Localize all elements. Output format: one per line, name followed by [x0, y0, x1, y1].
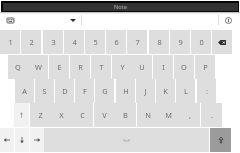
staticText: F	[83, 86, 87, 96]
button[interactable]: Shift	[14, 103, 29, 127]
staticText: G	[102, 86, 108, 96]
button[interactable]: :	[197, 79, 216, 103]
button[interactable]: T	[91, 55, 111, 79]
button[interactable]: 3	[43, 30, 63, 54]
staticText: Q	[15, 62, 21, 72]
button[interactable]: M	[158, 103, 179, 127]
button[interactable]: G	[95, 79, 114, 103]
button[interactable]: O	[174, 55, 194, 79]
staticText: H	[123, 86, 129, 96]
button[interactable]: Enter	[210, 128, 231, 152]
button[interactable]: 7	[127, 30, 147, 54]
button[interactable]: N	[137, 103, 158, 127]
button[interactable]: L	[176, 79, 195, 103]
button[interactable]: D	[55, 79, 74, 103]
button[interactable]: Y	[112, 55, 132, 79]
button[interactable]: E	[49, 55, 69, 79]
staticText: O	[181, 62, 187, 72]
button[interactable]: J	[136, 79, 155, 103]
staticText: 5	[93, 37, 98, 47]
staticText: J	[144, 86, 147, 96]
staticText: ,	[189, 110, 191, 120]
button[interactable]: R	[70, 55, 90, 79]
staticText: 3	[51, 37, 56, 47]
staticText: D	[62, 86, 68, 96]
staticText: 2	[29, 37, 34, 47]
staticText: Note	[114, 3, 127, 11]
staticText: 0	[199, 37, 204, 47]
staticText: U	[139, 62, 145, 72]
button[interactable]: Choose keyboard layout	[67, 15, 78, 26]
button[interactable]: 2	[21, 30, 41, 54]
button[interactable]: Q	[8, 55, 28, 79]
staticText: 9	[178, 37, 183, 47]
button[interactable]: W	[28, 55, 48, 79]
button[interactable]: I	[153, 55, 173, 79]
staticText: .	[211, 110, 213, 120]
button[interactable]: Move cursor right	[30, 128, 44, 152]
staticText: 1	[8, 37, 13, 47]
staticText: I	[162, 62, 165, 72]
staticText: V	[102, 110, 107, 120]
button[interactable]: Z	[30, 103, 51, 127]
staticText: E	[57, 62, 62, 72]
staticText: C	[80, 110, 85, 120]
button[interactable]: X	[51, 103, 72, 127]
button[interactable]: Change input method	[4, 15, 16, 26]
staticText: R	[78, 62, 83, 72]
button[interactable]: 6	[106, 30, 126, 54]
staticText: 6	[114, 37, 119, 47]
staticText: A	[22, 86, 27, 96]
button[interactable]: 8	[149, 30, 169, 54]
staticText: S	[42, 86, 47, 96]
button[interactable]: F	[75, 79, 94, 103]
button[interactable]: B	[115, 103, 136, 127]
staticText: P	[203, 62, 208, 72]
button[interactable]: Backspace	[212, 30, 232, 54]
button[interactable]: 9	[170, 30, 190, 54]
button[interactable]: V	[94, 103, 115, 127]
staticText: 8	[157, 37, 162, 47]
button[interactable]: U	[132, 55, 152, 79]
staticText: B	[123, 110, 128, 120]
staticText: M	[165, 110, 172, 120]
button[interactable]: P	[195, 55, 215, 79]
button[interactable]: ,	[179, 103, 200, 127]
button[interactable]: 5	[85, 30, 105, 54]
button[interactable]: K	[156, 79, 175, 103]
staticText: 4	[72, 37, 77, 47]
staticText: T	[99, 62, 104, 72]
staticText: Z	[38, 110, 43, 120]
staticText: L	[184, 86, 188, 96]
staticText: 7	[135, 37, 140, 47]
staticText: :	[206, 86, 208, 96]
button[interactable]: Move cursor left	[0, 128, 14, 152]
staticText: N	[145, 110, 151, 120]
staticText: Y	[120, 62, 125, 72]
button[interactable]: 1	[0, 30, 20, 54]
button[interactable]: 0	[191, 30, 211, 54]
button[interactable]: H	[116, 79, 135, 103]
button[interactable]: 4	[64, 30, 84, 54]
button[interactable]: C	[72, 103, 93, 127]
staticText: W	[35, 62, 42, 72]
staticText: X	[59, 110, 64, 120]
button[interactable]: Info	[222, 14, 235, 27]
staticText: K	[163, 86, 168, 96]
button[interactable]: Move cursor down	[15, 128, 29, 152]
button[interactable]: A	[15, 79, 34, 103]
button[interactable]: S	[35, 79, 54, 103]
